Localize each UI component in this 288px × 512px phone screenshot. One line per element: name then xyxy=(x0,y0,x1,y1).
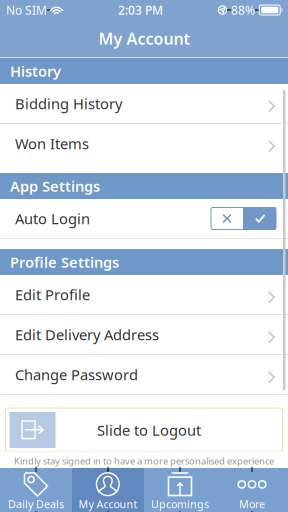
staticText: My Account xyxy=(78,497,137,511)
button[interactable]: Edit Profile xyxy=(0,275,288,315)
button[interactable]: Auto Login off xyxy=(211,207,243,229)
staticText: 88% xyxy=(231,2,255,18)
button[interactable]: Upcomings xyxy=(144,468,216,512)
staticText: Upcomings xyxy=(151,497,209,511)
staticText: My Account xyxy=(98,28,189,49)
button[interactable]: Change Password xyxy=(0,355,288,395)
button[interactable]: Won Items xyxy=(0,124,288,164)
staticText: App Settings xyxy=(10,176,100,196)
staticText: Slide to Logout xyxy=(97,420,201,440)
button[interactable]: More xyxy=(216,468,288,512)
staticText: No SIM xyxy=(6,2,47,18)
staticText: Profile Settings xyxy=(10,252,119,272)
staticText: More xyxy=(239,497,265,511)
button[interactable]: Edit Delivery Address xyxy=(0,315,288,355)
staticText: Won Items xyxy=(15,134,89,153)
button[interactable]: Daily Deals xyxy=(0,468,72,512)
button[interactable]: Slide to Logout xyxy=(5,408,282,452)
staticText: Bidding History xyxy=(15,94,122,113)
staticText: History xyxy=(10,61,61,81)
staticText: Change Password xyxy=(15,365,138,384)
staticText: Daily Deals xyxy=(8,497,64,511)
button[interactable]: My Account xyxy=(72,468,144,512)
staticText: Kindly stay signed in to have a more per… xyxy=(14,455,274,467)
staticText: Auto Login xyxy=(15,209,90,228)
staticText: Edit Profile xyxy=(15,285,90,304)
button[interactable]: Bidding History xyxy=(0,84,288,124)
staticText: Edit Delivery Address xyxy=(15,325,159,344)
staticText: 2:03 PM xyxy=(118,2,163,18)
button[interactable]: Auto Login on xyxy=(244,207,276,229)
